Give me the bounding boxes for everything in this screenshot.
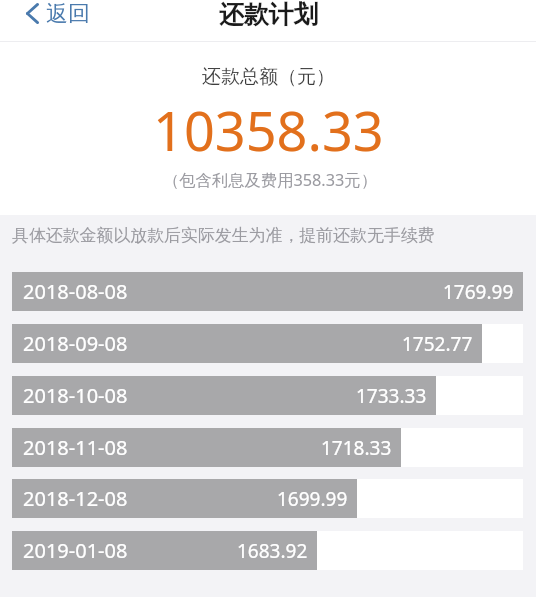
staticText: 10358.33 [153, 93, 384, 167]
button[interactable]: 返回 Back [26, 0, 90, 34]
button[interactable]: 2018-08-08 [12, 272, 523, 311]
button[interactable]: 2018-12-08 [12, 479, 523, 518]
staticText: 2019-01-08 [23, 537, 128, 564]
staticText: 2018-08-08 [23, 278, 128, 305]
button[interactable]: 2018-09-08 [12, 324, 523, 363]
button[interactable]: 2018-10-08 [12, 376, 523, 415]
button[interactable]: 2019-01-08 [12, 531, 523, 570]
staticText: 1769.99 [443, 279, 514, 305]
staticText: 2018-11-08 [23, 434, 128, 461]
staticText: 还款计划 [219, 0, 319, 30]
staticText: 还款总额（元） [202, 65, 335, 89]
button[interactable]: 2018-11-08 [12, 428, 523, 467]
staticText: 返回 [46, 0, 90, 28]
staticText: 1733.33 [356, 383, 427, 409]
staticText: 2018-10-08 [23, 382, 128, 409]
staticText: 1699.99 [277, 486, 348, 512]
staticText: 2018-12-08 [23, 485, 128, 512]
staticText: （包含利息及费用358.33元） [163, 169, 377, 191]
staticText: 1683.92 [237, 538, 308, 564]
staticText: 1718.33 [321, 435, 392, 461]
staticText: 2018-09-08 [23, 330, 128, 357]
staticText: 具体还款金额以放款后实际发生为准，提前还款无手续费 [12, 225, 435, 246]
staticText: 1752.77 [402, 331, 473, 357]
